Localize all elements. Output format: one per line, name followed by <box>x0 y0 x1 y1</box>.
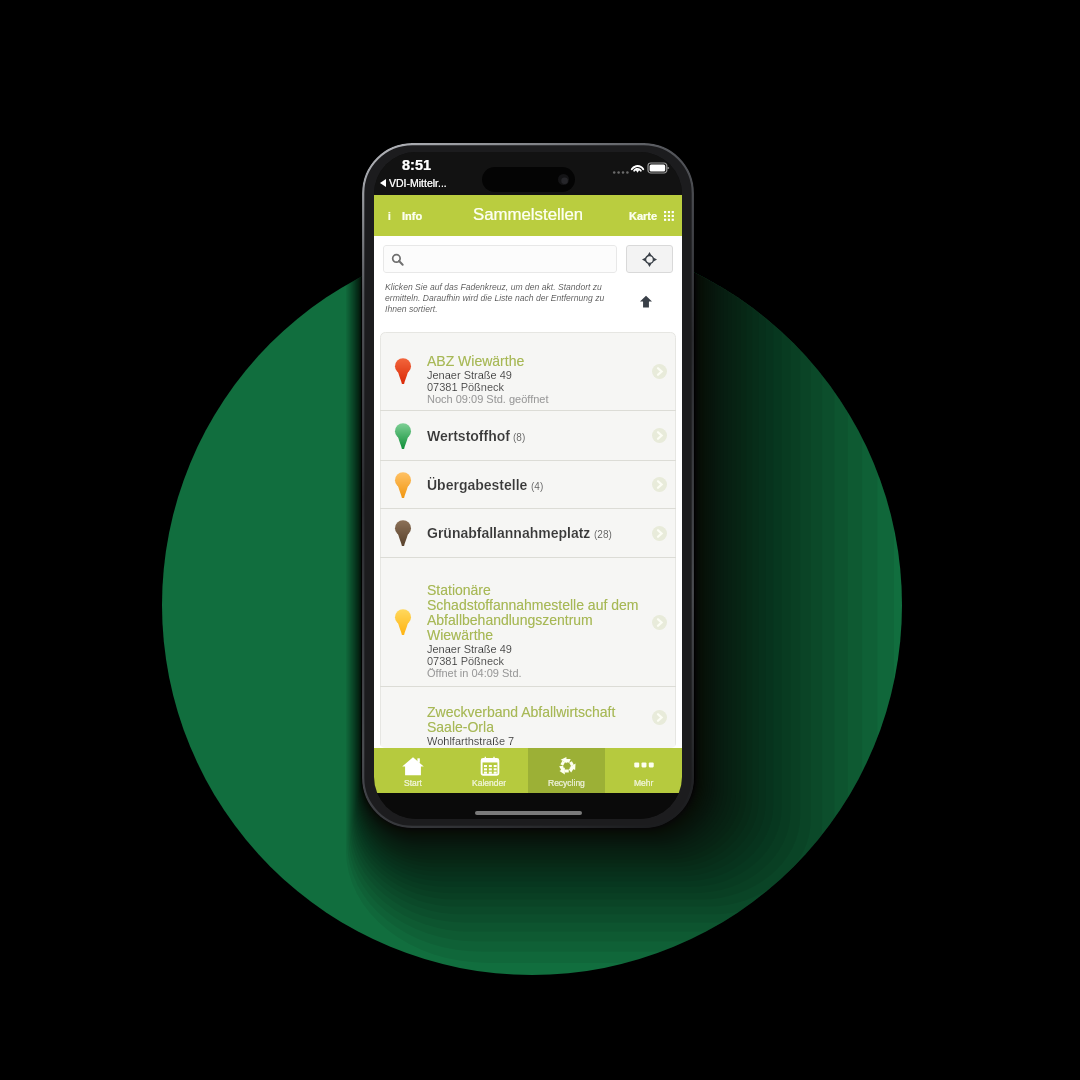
staticText: 07381 Pößneck <box>427 655 505 667</box>
staticText: 07381 Pößneck <box>427 381 505 393</box>
staticText: Stationäre Schadstoffannahmestelle auf d… <box>427 582 642 643</box>
button[interactable]: Grünabfallannahmeplatz <box>380 509 676 557</box>
staticText: Info <box>402 210 423 222</box>
button[interactable]: Recycling <box>528 748 605 793</box>
staticText: Klicken Sie auf das Fadenkreuz, um den a… <box>385 282 609 314</box>
staticText: Wohlfarthstraße 7 <box>427 735 515 747</box>
staticText: 8:51 <box>402 157 432 173</box>
staticText: Mehr <box>634 778 654 787</box>
staticText: i <box>388 211 391 222</box>
button[interactable]: i <box>374 209 429 223</box>
button[interactable]: Wertstoffhof <box>380 411 676 460</box>
button[interactable]: Stationäre Schadstoffannahmestelle auf d… <box>380 558 676 686</box>
staticText: Öffnet in 04:09 Std. <box>427 667 522 679</box>
staticText: VDI-Mittelr... <box>389 177 447 189</box>
other: Grid view <box>664 211 674 221</box>
button[interactable]: ABZ Wiewärthe <box>380 332 676 410</box>
staticText: Noch 09:09 Std. geöffnet <box>427 393 549 405</box>
button[interactable]: Search <box>383 245 617 273</box>
staticText: (8) <box>513 432 526 443</box>
staticText: Wertstoffhof <box>427 428 510 444</box>
staticText: ABZ Wiewärthe <box>427 353 525 369</box>
staticText: Recycling <box>548 778 585 787</box>
staticText: Jenaer Straße 49 <box>427 369 512 381</box>
staticText: Sammelstellen <box>473 205 584 224</box>
button[interactable]: Mehr <box>605 748 682 793</box>
button[interactable]: Locate current position <box>626 245 673 273</box>
staticText: Zweckverband Abfallwirtschaft Saale-Orla <box>427 704 642 735</box>
button[interactable]: Kalender <box>451 748 528 793</box>
staticText: (4) <box>531 481 544 492</box>
staticText: Kalender <box>472 778 507 787</box>
button[interactable]: Zweckverband Abfallwirtschaft Saale-Orla <box>380 687 676 748</box>
staticText: Jenaer Straße 49 <box>427 643 512 655</box>
staticText: (28) <box>594 529 612 540</box>
staticText: Grünabfallannahmeplatz <box>427 525 591 541</box>
staticText: Übergabestelle <box>427 477 528 493</box>
staticText: Karte <box>629 210 658 222</box>
button[interactable]: Scroll to top <box>609 282 682 316</box>
staticText: Start <box>404 778 422 787</box>
button[interactable]: Start <box>374 748 451 793</box>
button[interactable]: Karte <box>623 210 682 222</box>
button[interactable]: Übergabestelle <box>380 461 676 508</box>
